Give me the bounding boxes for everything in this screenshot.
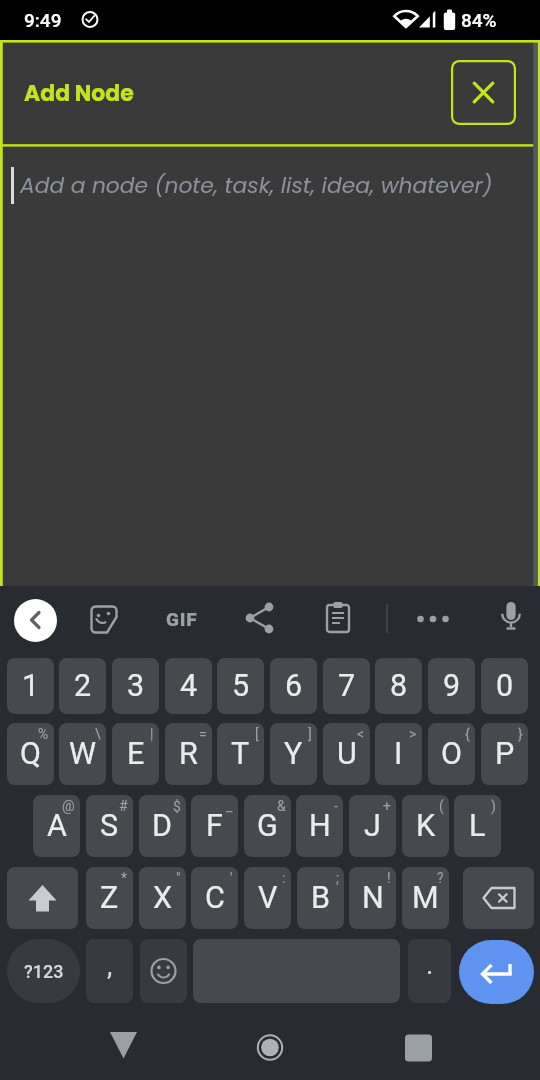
staticText: M	[412, 880, 439, 916]
staticText: D	[152, 808, 173, 844]
staticText: ,	[107, 950, 113, 982]
staticText: *	[121, 870, 128, 886]
staticText: %	[38, 726, 49, 742]
button[interactable]: B	[297, 867, 344, 929]
button[interactable]: J	[349, 795, 396, 857]
button[interactable]: F	[191, 795, 238, 857]
button[interactable]	[459, 940, 534, 1004]
button[interactable]: S	[86, 795, 133, 857]
button[interactable]: T	[217, 723, 264, 785]
button[interactable]: C	[191, 867, 238, 929]
staticText: 5	[232, 668, 250, 704]
button[interactable]: P	[481, 723, 528, 785]
staticText: H	[309, 808, 331, 844]
button[interactable]	[451, 60, 516, 125]
button[interactable]: 7	[323, 658, 370, 714]
staticText: 1	[22, 668, 40, 704]
staticText: (	[439, 798, 444, 814]
staticText: W	[69, 736, 97, 772]
staticText: ]	[308, 726, 312, 742]
staticText: F	[206, 808, 223, 844]
button[interactable]: 0	[481, 658, 528, 714]
staticText: 8	[390, 668, 408, 704]
button[interactable]: X	[139, 867, 186, 929]
staticText: E	[127, 736, 145, 772]
button[interactable]: 8	[375, 658, 422, 714]
button[interactable]	[140, 939, 187, 1003]
staticText: -	[334, 798, 338, 814]
staticText: &	[277, 798, 286, 814]
staticText: ?123	[24, 961, 64, 982]
button[interactable]: 4	[165, 658, 212, 714]
button[interactable]: 5	[217, 658, 264, 714]
staticText: B	[311, 880, 331, 916]
staticText: ;	[336, 870, 339, 886]
staticText: Add a node (note, task, list, idea, what…	[20, 170, 493, 201]
staticText: [	[255, 726, 259, 742]
button[interactable]	[7, 867, 78, 929]
staticText: X	[153, 880, 173, 916]
staticText: P	[495, 736, 515, 772]
staticText: _	[226, 798, 233, 814]
staticText: A	[47, 808, 67, 844]
button[interactable]: M	[402, 867, 449, 929]
staticText: 4	[180, 668, 198, 704]
button[interactable]: L	[454, 795, 501, 857]
button[interactable]: K	[402, 795, 449, 857]
staticText: .	[426, 948, 434, 981]
button[interactable]: H	[296, 795, 343, 857]
staticText: 9	[443, 668, 461, 704]
button[interactable]: A	[33, 795, 80, 857]
staticText: 9:49	[24, 9, 62, 31]
staticText: K	[416, 808, 436, 844]
staticText: !	[387, 870, 391, 886]
staticText: $	[173, 798, 181, 814]
button[interactable]: R	[165, 723, 212, 785]
staticText: L	[469, 808, 486, 844]
button[interactable]: V	[244, 867, 291, 929]
button[interactable]: ,	[86, 939, 133, 1003]
staticText: C	[205, 880, 225, 916]
staticText: #	[119, 798, 128, 814]
button[interactable]: G	[244, 795, 291, 857]
button[interactable]: Z	[86, 867, 133, 929]
button[interactable]: ?123	[7, 939, 80, 1003]
staticText: "	[176, 870, 181, 886]
button[interactable]: 6	[270, 658, 317, 714]
button[interactable]: 2	[59, 658, 106, 714]
button[interactable]: 3	[112, 658, 159, 714]
button[interactable]: O	[428, 723, 475, 785]
staticText: I	[394, 736, 403, 772]
staticText: S	[100, 808, 119, 844]
staticText: Q	[20, 736, 41, 772]
button[interactable]	[14, 599, 57, 642]
staticText: 7	[338, 668, 356, 704]
staticText: '	[230, 870, 233, 886]
staticText: N	[362, 880, 384, 916]
button[interactable]: U	[323, 723, 370, 785]
button[interactable]: Y	[270, 723, 317, 785]
staticText: Y	[284, 736, 303, 772]
button[interactable]: N	[349, 867, 396, 929]
staticText: |	[150, 726, 154, 742]
button[interactable]: D	[139, 795, 186, 857]
button[interactable]: 1	[7, 658, 54, 714]
button[interactable]: I	[375, 723, 422, 785]
button[interactable]	[96, 1018, 151, 1073]
button[interactable]: .	[408, 939, 451, 1003]
button[interactable]: 9	[428, 658, 475, 714]
button[interactable]	[242, 1018, 297, 1073]
staticText: R	[179, 736, 198, 772]
staticText: <	[357, 726, 365, 742]
button[interactable]	[391, 1018, 446, 1073]
staticText: :	[282, 870, 286, 886]
button[interactable]: W	[59, 723, 106, 785]
button[interactable]	[463, 867, 534, 929]
staticText: Z	[100, 880, 119, 916]
staticText: +	[383, 798, 391, 814]
staticText: 2	[74, 668, 92, 704]
button[interactable]: Q	[7, 723, 54, 785]
staticText: }	[518, 726, 523, 742]
button[interactable]: E	[112, 723, 159, 785]
